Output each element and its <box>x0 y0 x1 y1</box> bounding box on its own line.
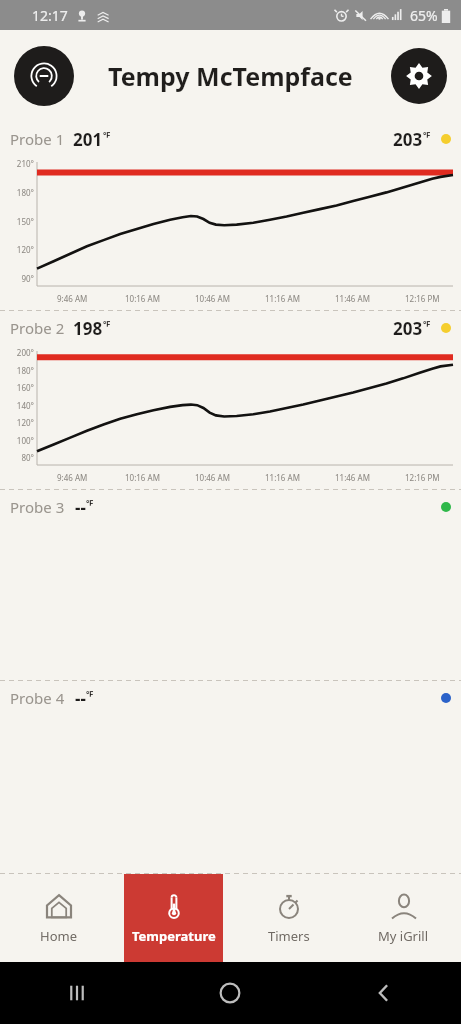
staticText: 11:16 AM <box>265 472 300 483</box>
button[interactable]: Back <box>371 980 397 1006</box>
button[interactable]: My iGrill <box>346 874 461 962</box>
staticText: Timers <box>268 927 310 945</box>
staticText: 10:16 AM <box>125 472 160 483</box>
staticText: 140° <box>16 400 34 411</box>
staticText: 150° <box>16 216 34 227</box>
button[interactable]: Timers <box>231 874 346 962</box>
staticText: ℉ <box>423 318 431 329</box>
button[interactable]: Recent apps <box>64 980 90 1006</box>
button[interactable]: Temperature <box>124 874 223 962</box>
staticText: 203 <box>393 128 423 151</box>
button[interactable]: Probe 1 <box>0 122 461 310</box>
staticText: 11:46 AM <box>335 293 370 304</box>
staticText: 120° <box>16 417 34 428</box>
staticText: ℉ <box>86 497 94 508</box>
staticText: 12:16 PM <box>405 472 440 483</box>
staticText: 12:17 <box>32 6 68 25</box>
button[interactable]: Probe 2 <box>0 311 461 489</box>
staticText: 201 <box>73 128 103 151</box>
staticText: 11:46 AM <box>335 472 370 483</box>
button[interactable]: Probe 3 <box>0 490 461 680</box>
staticText: 9:46 AM <box>57 293 88 304</box>
staticText: 203 <box>393 317 423 340</box>
staticText: My iGrill <box>378 927 429 945</box>
staticText: 10:46 AM <box>195 293 230 304</box>
staticText: 9:46 AM <box>57 472 88 483</box>
staticText: 100° <box>16 435 34 446</box>
staticText: Probe 4 <box>10 688 65 708</box>
staticText: ℉ <box>103 129 111 140</box>
staticText: Probe 1 <box>10 129 65 149</box>
staticText: 180° <box>16 187 34 198</box>
staticText: Probe 2 <box>10 318 65 338</box>
staticText: 10:46 AM <box>195 472 230 483</box>
staticText: -- <box>75 687 86 710</box>
staticText: Probe 3 <box>10 497 65 517</box>
staticText: Tempy McTempface <box>108 59 353 93</box>
staticText: 65% <box>410 6 438 25</box>
button[interactable]: Probe 4 <box>0 681 461 846</box>
staticText: ℉ <box>86 688 94 699</box>
staticText: 198 <box>73 317 103 340</box>
button[interactable]: Device <box>14 46 74 106</box>
staticText: 12:16 PM <box>405 293 440 304</box>
staticText: 200° <box>16 347 34 358</box>
staticText: 180° <box>16 365 34 376</box>
staticText: ℉ <box>103 318 111 329</box>
staticText: 90° <box>21 273 34 284</box>
staticText: Temperature <box>132 927 216 945</box>
staticText: ℉ <box>423 129 431 140</box>
staticText: -- <box>75 496 86 519</box>
staticText: 80° <box>21 452 34 463</box>
button[interactable]: Home <box>217 980 243 1006</box>
staticText: 210° <box>16 158 34 169</box>
staticText: 11:16 AM <box>265 293 300 304</box>
button[interactable]: Home <box>0 874 116 962</box>
staticText: 10:16 AM <box>125 293 160 304</box>
staticText: 120° <box>16 244 34 255</box>
button[interactable]: Settings <box>391 48 447 104</box>
staticText: Home <box>40 927 77 945</box>
staticText: 160° <box>16 382 34 393</box>
